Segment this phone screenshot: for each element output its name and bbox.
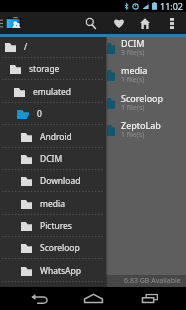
button[interactable]: WhatsApp xyxy=(0,260,106,282)
button[interactable]: ZeptoLab xyxy=(106,117,186,144)
button[interactable]: emulated xyxy=(0,81,106,103)
button[interactable]: 0 xyxy=(0,103,106,125)
button[interactable]: Scoreloop xyxy=(106,90,186,117)
staticText: Download xyxy=(40,175,81,187)
staticText: 6.83 GB Available xyxy=(124,276,181,286)
button[interactable]: DCIM xyxy=(106,35,186,62)
button[interactable]: Back xyxy=(22,287,57,310)
staticText: Scoreloop xyxy=(121,92,164,104)
staticText: 1 file(s) xyxy=(121,75,145,85)
staticText: Android xyxy=(40,131,72,143)
button[interactable]: media xyxy=(0,193,106,215)
staticText: emulated xyxy=(33,86,72,98)
button[interactable]: Search xyxy=(77,12,105,34)
button[interactable]: DCIM xyxy=(0,148,106,170)
staticText: media xyxy=(40,198,65,210)
button[interactable]: Android xyxy=(0,126,106,148)
button[interactable]: Recents xyxy=(132,287,167,310)
staticText: 1 file(s) xyxy=(121,103,145,113)
button[interactable]: Home xyxy=(131,12,159,34)
staticText: WhatsApp xyxy=(40,265,81,277)
staticText: DCIM xyxy=(121,37,145,49)
staticText: storage xyxy=(29,63,60,75)
button[interactable]: / xyxy=(0,36,106,58)
button[interactable]: Bookmarks xyxy=(105,12,133,34)
staticText: 11:02 xyxy=(160,0,184,12)
staticText: Pictures xyxy=(40,220,72,232)
button[interactable]: Home xyxy=(76,287,111,310)
staticText: Scoreloop xyxy=(40,242,80,254)
button[interactable]: media xyxy=(106,62,186,89)
button[interactable]: Scoreloop xyxy=(0,237,106,259)
staticText: media xyxy=(121,64,148,76)
staticText: DCIM xyxy=(40,153,63,165)
staticText: / xyxy=(24,41,28,53)
button[interactable]: Pictures xyxy=(0,215,106,237)
staticText: ZeptoLab xyxy=(121,119,161,131)
button[interactable]: Download xyxy=(0,170,106,192)
staticText: 1 file(s) xyxy=(121,130,145,140)
staticText: 3 file(s) xyxy=(121,48,145,58)
staticText: 0 xyxy=(37,108,42,120)
button[interactable]: More options xyxy=(158,12,186,34)
button[interactable]: ES File Explorer xyxy=(6,16,21,30)
button[interactable]: storage xyxy=(0,58,106,80)
